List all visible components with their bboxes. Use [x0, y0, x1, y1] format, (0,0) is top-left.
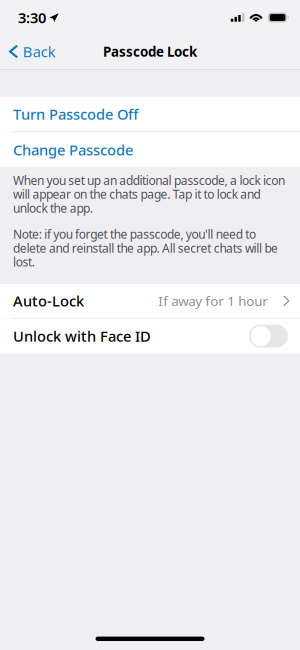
staticText: 3:30 [18, 8, 46, 27]
staticText: Back [23, 42, 56, 61]
button[interactable]: Auto-Lock [0, 284, 300, 318]
staticText: Unlock with Face ID [13, 326, 151, 346]
staticText: Change Passcode [13, 140, 133, 160]
staticText: When you set up an additional passcode, … [13, 172, 285, 216]
staticText: Note: if you forget the passcode, you'll… [13, 226, 278, 270]
button[interactable]: Unlock with Face ID [249, 325, 288, 348]
button[interactable]: Turn Passcode Off [0, 97, 300, 132]
staticText: If away for 1 hour [158, 292, 268, 310]
button[interactable]: Back [0, 31, 66, 69]
staticText: Auto-Lock [13, 291, 84, 311]
staticText: Turn Passcode Off [13, 104, 138, 124]
staticText: Passcode Lock [103, 43, 197, 60]
button[interactable]: Change Passcode [0, 132, 300, 167]
